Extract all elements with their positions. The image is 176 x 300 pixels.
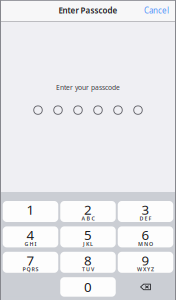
staticText: 5: [84, 226, 92, 244]
button[interactable]: 3: [118, 201, 173, 222]
button[interactable]: Cancel: [144, 1, 176, 20]
staticText: 4: [26, 226, 34, 244]
button[interactable]: 6: [118, 226, 173, 247]
staticText: P Q R S: [22, 266, 38, 273]
staticText: W X Y Z: [137, 266, 154, 273]
staticText: 1: [26, 201, 34, 218]
staticText: D E F: [139, 215, 151, 222]
button[interactable]: 2: [60, 201, 116, 222]
staticText: Enter your passcode: [56, 83, 120, 92]
staticText: 6: [141, 226, 149, 244]
button[interactable]: 9: [118, 252, 173, 273]
staticText: 0: [84, 278, 92, 296]
button[interactable]: 0: [60, 277, 116, 297]
staticText: 2: [84, 201, 92, 218]
staticText: A B C: [81, 215, 94, 222]
staticText: M N O: [138, 240, 153, 247]
staticText: 7: [26, 251, 34, 269]
button[interactable]: 7: [3, 252, 58, 273]
staticText: 8: [84, 251, 92, 269]
staticText: Cancel: [144, 5, 169, 16]
button[interactable]: 1: [3, 201, 58, 222]
button[interactable]: 5: [60, 226, 116, 247]
button[interactable]: 8: [60, 252, 116, 273]
staticText: J K L: [83, 240, 93, 247]
staticText: 3: [141, 201, 149, 218]
button[interactable]: 4: [3, 226, 58, 247]
staticText: T U V: [82, 266, 94, 273]
staticText: 9: [141, 251, 149, 269]
staticText: Enter Passcode: [58, 5, 117, 16]
button[interactable]: Delete: [118, 277, 173, 297]
staticText: G H I: [24, 240, 36, 247]
